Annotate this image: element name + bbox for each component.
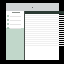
button[interactable] [25, 24, 64, 26]
button[interactable] [25, 34, 64, 36]
button[interactable] [6, 18, 24, 22]
button[interactable] [25, 14, 64, 16]
button[interactable] [25, 36, 64, 38]
button[interactable] [25, 28, 64, 30]
button[interactable] [25, 38, 64, 40]
button[interactable] [25, 44, 64, 46]
button[interactable] [25, 26, 64, 28]
button[interactable] [6, 14, 24, 18]
button[interactable] [6, 26, 24, 30]
button[interactable] [25, 18, 64, 20]
button[interactable] [25, 16, 64, 18]
button[interactable] [25, 32, 64, 34]
button[interactable] [25, 22, 64, 24]
button[interactable] [25, 30, 64, 32]
button[interactable] [25, 40, 64, 42]
button[interactable] [25, 42, 64, 44]
button[interactable] [25, 20, 64, 22]
button[interactable] [6, 22, 24, 26]
